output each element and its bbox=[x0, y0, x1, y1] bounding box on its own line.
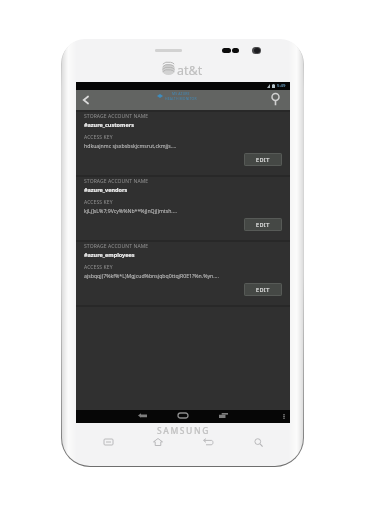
button[interactable]: Navigate up bbox=[76, 90, 95, 110]
staticText: EDIT bbox=[256, 156, 270, 163]
staticText: STORAGE ACCOUNT NAME bbox=[84, 243, 149, 250]
staticText: #azure_vendors bbox=[84, 186, 128, 193]
button[interactable]: More options bbox=[278, 410, 290, 423]
staticText: ACCESS KEY bbox=[84, 134, 113, 141]
button[interactable]: Recent apps bbox=[216, 409, 230, 422]
button[interactable]: Search bbox=[270, 90, 290, 110]
staticText: MS AZURE bbox=[172, 91, 190, 96]
staticText: ACCESS KEY bbox=[84, 199, 113, 206]
staticText: at&t bbox=[177, 62, 203, 79]
staticText: STORAGE ACCOUNT NAME bbox=[84, 113, 149, 120]
staticText: SAMSUNG bbox=[157, 425, 210, 437]
button[interactable]: EDIT bbox=[244, 218, 282, 231]
button[interactable]: EDIT bbox=[244, 153, 282, 166]
staticText: EDIT bbox=[256, 286, 270, 293]
button[interactable]: Back bbox=[135, 409, 149, 422]
staticText: EDIT bbox=[256, 221, 270, 228]
button[interactable]: EDIT bbox=[244, 283, 282, 296]
staticText: 5:49 bbox=[277, 83, 286, 89]
staticText: ajsbqqj(7%kf%*L)Mgjcud%bnsjqbq0ttqjR0E1?… bbox=[84, 272, 219, 279]
staticText: HEALTH MONITOR bbox=[165, 96, 197, 101]
staticText: kjLj]sL%7;9Vcy%%Nb**%jJnQjJ)mtsh.... bbox=[84, 207, 177, 214]
staticText: #azure_employees bbox=[84, 251, 135, 258]
staticText: STORAGE ACCOUNT NAME bbox=[84, 178, 149, 185]
button[interactable]: Home bbox=[176, 409, 190, 422]
staticText: hdkuajnmc sjsxbsbskjcmsrut,ckmjjs.... bbox=[84, 142, 177, 149]
staticText: #azure_customers bbox=[84, 121, 134, 128]
staticText: ACCESS KEY bbox=[84, 264, 113, 271]
